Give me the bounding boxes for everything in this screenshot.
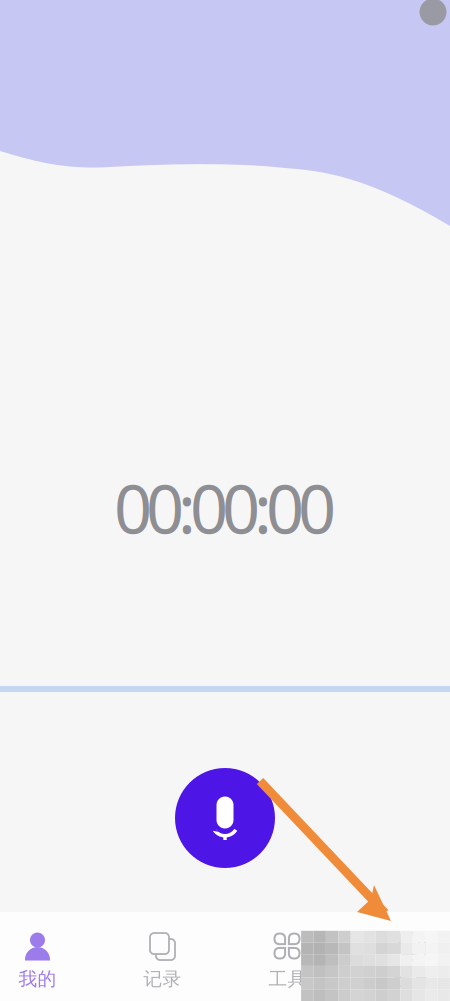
button[interactable]: 我的 [0,923,100,999]
button[interactable]: 设置 [350,923,450,999]
button[interactable]: Start recording [175,768,275,868]
button[interactable]: 工具 [225,923,350,999]
staticText: 记录 [143,967,181,990]
staticText: 00:00:00 [114,464,336,552]
staticText: 工具 [268,967,306,990]
staticText: 设置 [393,967,431,990]
button[interactable]: More options [419,0,447,26]
staticText: 我的 [18,967,56,990]
button[interactable]: 记录 [100,923,225,999]
